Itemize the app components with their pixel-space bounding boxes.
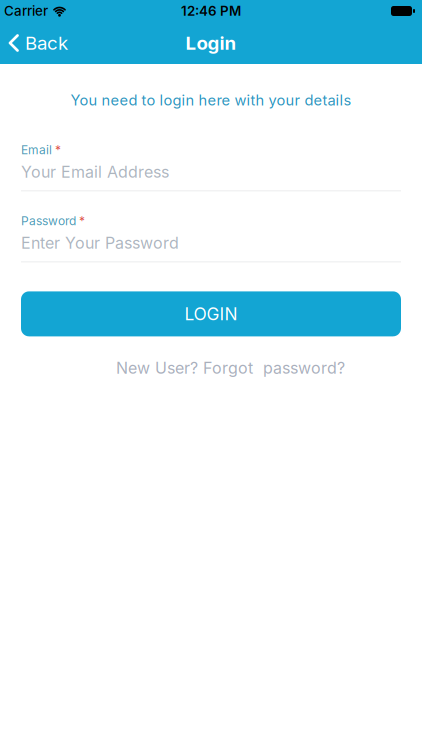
staticText: 12:46 PM <box>181 3 241 19</box>
staticText: LOGIN <box>184 304 237 324</box>
staticText: New User? Forgot password? <box>116 358 345 377</box>
staticText: * <box>79 214 85 228</box>
button[interactable]: LOGIN <box>21 291 401 336</box>
button[interactable]: New User? Forgot password? <box>21 358 401 377</box>
staticText: Your Email Address <box>21 162 169 181</box>
staticText: Enter Your Password <box>21 233 179 252</box>
staticText: Carrier <box>4 3 48 19</box>
staticText: Password <box>21 214 76 228</box>
button[interactable]: Back <box>0 26 68 60</box>
staticText: Email <box>21 143 52 157</box>
staticText: Login <box>185 32 236 54</box>
button[interactable]: Your Email Address <box>21 157 401 191</box>
staticText: Back <box>25 32 68 54</box>
staticText: * <box>55 143 61 157</box>
staticText: You need to login here with your details <box>70 91 351 109</box>
button[interactable]: Enter Your Password <box>21 228 401 262</box>
